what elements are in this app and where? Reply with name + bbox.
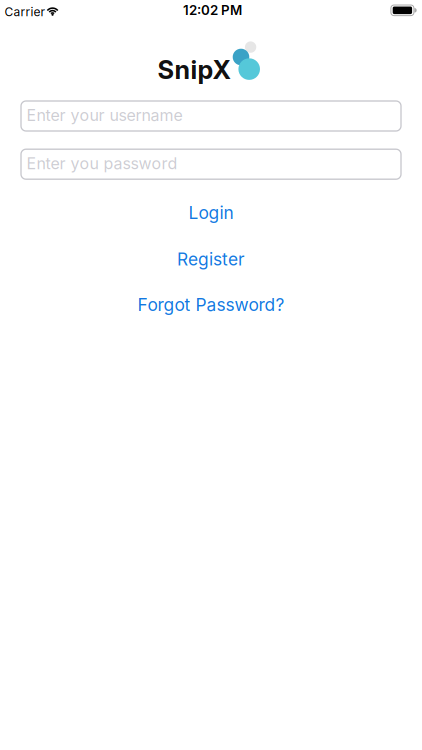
staticText: SnipX xyxy=(157,55,230,85)
staticText: 12:02 PM xyxy=(183,2,242,18)
staticText: Carrier xyxy=(4,5,45,19)
button[interactable]: Forgot Password? xyxy=(137,294,284,315)
staticText: Register xyxy=(177,249,245,270)
button[interactable]: Register xyxy=(177,249,245,270)
staticText: Forgot Password? xyxy=(137,294,284,315)
staticText: Enter you password xyxy=(27,154,178,173)
button[interactable]: Login xyxy=(188,202,233,223)
staticText: Enter your username xyxy=(27,106,183,125)
textField[interactable]: Enter you password xyxy=(21,149,401,179)
staticText: Login xyxy=(188,202,233,223)
textField[interactable]: Enter your username xyxy=(21,101,401,131)
